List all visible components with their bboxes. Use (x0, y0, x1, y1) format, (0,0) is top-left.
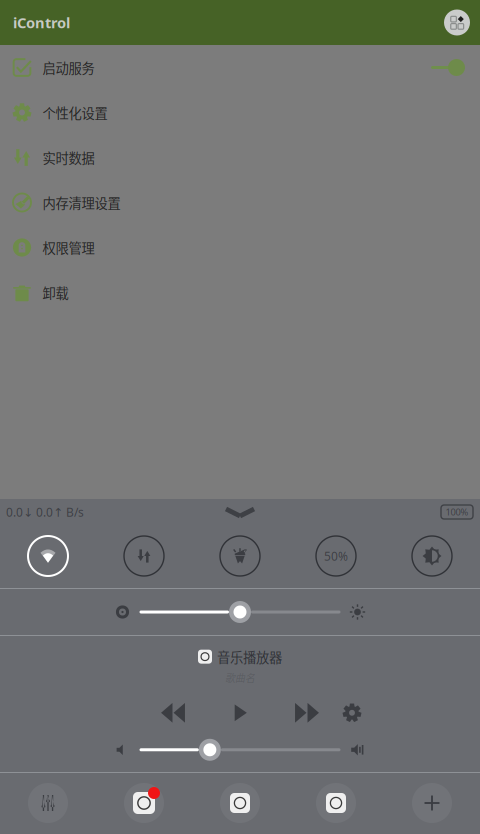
button[interactable]: 个性化设置 (0, 90, 480, 135)
button[interactable]: 内存清理设置 (0, 180, 480, 225)
staticText: 卸载 (42, 283, 68, 302)
button[interactable]: Next (280, 698, 334, 728)
staticText: 100% (445, 506, 468, 518)
button[interactable]: Flashlight (192, 530, 288, 582)
staticText: 内存清理设置 (42, 193, 120, 212)
button[interactable]: Mobile data (96, 530, 192, 582)
button[interactable]: Play (200, 698, 280, 728)
button[interactable]: Camera (96, 773, 192, 833)
button[interactable]: Wi-Fi (0, 530, 96, 582)
button[interactable]: 权限管理 (0, 225, 480, 270)
button[interactable]: Previous (146, 698, 200, 728)
staticText: 启动服务 (42, 58, 94, 77)
staticText: 50% (324, 548, 348, 564)
button[interactable]: 50% (288, 530, 384, 582)
button[interactable]: 启动服务 (0, 45, 480, 90)
staticText: 歌曲名 (225, 670, 255, 685)
staticText: iControl (13, 13, 70, 32)
button[interactable]: 实时数据 (0, 135, 480, 180)
staticText: 音乐播放器 (217, 647, 282, 666)
button[interactable]: Auto brightness (384, 530, 480, 582)
staticText: 个性化设置 (42, 103, 107, 122)
button[interactable]: App (192, 773, 288, 833)
button[interactable]: 卸载 (0, 270, 480, 315)
button[interactable]: Equaliser (334, 698, 370, 728)
staticText: 实时数据 (42, 148, 94, 167)
button[interactable]: Controls (0, 773, 96, 833)
button[interactable]: App (288, 773, 384, 833)
staticText: 0.0↓ 0.0↑ B/s (6, 504, 84, 520)
button[interactable]: Apps (440, 5, 474, 39)
staticText: 权限管理 (42, 238, 94, 257)
button[interactable]: Add (384, 773, 480, 833)
